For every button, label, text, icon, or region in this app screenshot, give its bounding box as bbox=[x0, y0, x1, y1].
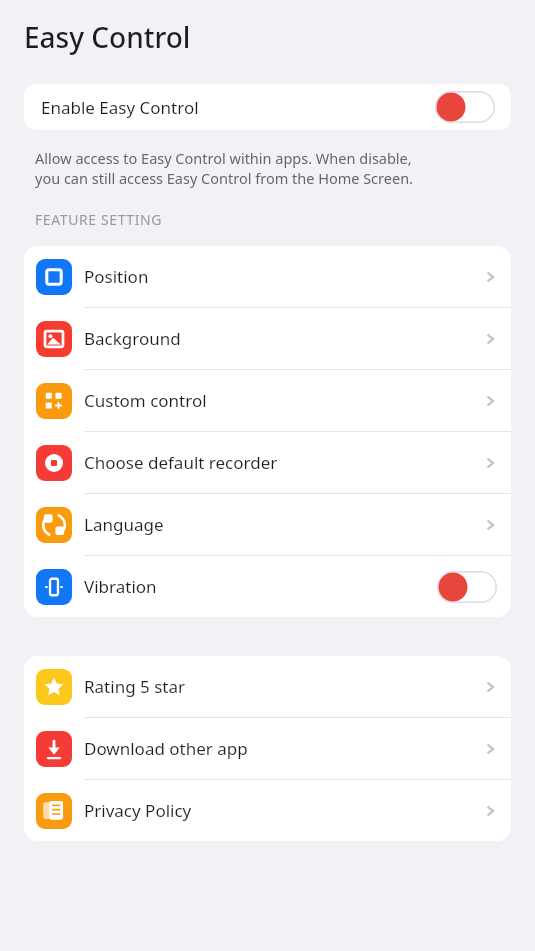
staticText: Allow access to Easy Control within apps… bbox=[35, 148, 413, 188]
staticText: Choose default recorder bbox=[84, 451, 278, 474]
staticText: Vibration bbox=[84, 575, 157, 598]
staticText: Background bbox=[84, 327, 181, 350]
staticText: FEATURE SETTING bbox=[35, 210, 163, 229]
button[interactable]: Enable Easy Control bbox=[24, 84, 511, 130]
staticText: Enable Easy Control bbox=[41, 96, 199, 119]
staticText: Easy Control bbox=[24, 18, 191, 56]
button[interactable]: Privacy Policy bbox=[24, 780, 511, 841]
button[interactable]: Download other app bbox=[24, 718, 511, 779]
button[interactable]: Vibration bbox=[24, 556, 511, 617]
staticText: Language bbox=[84, 513, 164, 536]
button[interactable]: Rating 5 star bbox=[24, 656, 511, 717]
staticText: Custom control bbox=[84, 389, 207, 412]
button[interactable]: Toggle bbox=[435, 91, 495, 123]
button[interactable]: Background bbox=[24, 308, 511, 369]
staticText: Position bbox=[84, 265, 149, 288]
staticText: Download other app bbox=[84, 737, 248, 760]
button[interactable]: Language bbox=[24, 494, 511, 555]
staticText: Rating 5 star bbox=[84, 675, 185, 698]
button[interactable]: Toggle bbox=[437, 571, 497, 603]
staticText: Privacy Policy bbox=[84, 799, 192, 822]
button[interactable]: Position bbox=[24, 246, 511, 307]
button[interactable]: Custom control bbox=[24, 370, 511, 431]
button[interactable]: Choose default recorder bbox=[24, 432, 511, 493]
